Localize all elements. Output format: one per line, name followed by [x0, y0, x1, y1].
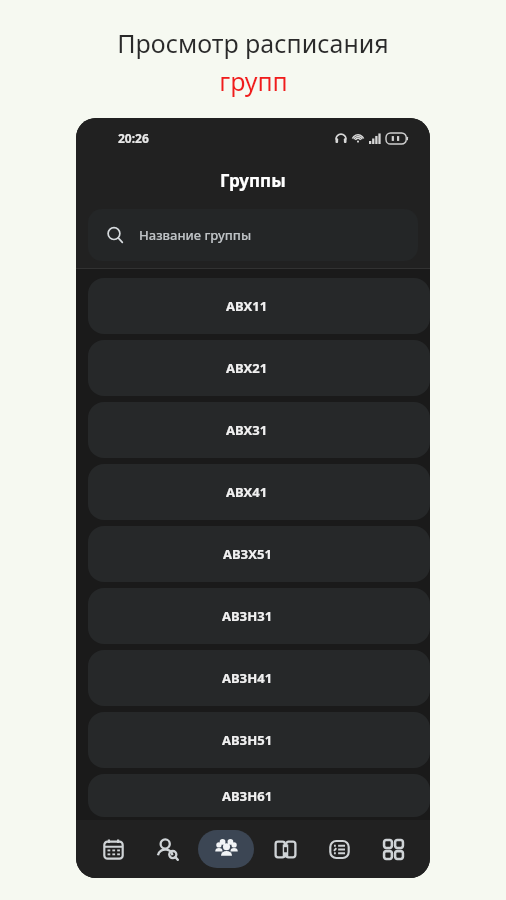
staticText: АВЗН61: [222, 787, 273, 805]
staticText: АВХ21: [226, 359, 268, 377]
staticText: 20:26: [118, 130, 149, 146]
button[interactable]: АВХ21: [88, 340, 430, 396]
staticText: АВХ11: [226, 297, 268, 315]
staticText: групп: [219, 64, 288, 98]
staticText: Просмотр расписания: [117, 26, 389, 60]
button[interactable]: АВЗН51: [88, 712, 430, 768]
button[interactable]: Groups: [198, 830, 254, 868]
button[interactable]: Buildings: [262, 829, 308, 869]
button[interactable]: Название группы: [88, 209, 418, 261]
staticText: АВХ41: [226, 483, 268, 501]
staticText: АВЗН31: [222, 607, 273, 625]
staticText: Группы: [220, 169, 286, 192]
staticText: АВЗХ51: [223, 545, 272, 563]
button[interactable]: Calendar: [90, 829, 136, 869]
staticText: АВЗН41: [222, 669, 273, 687]
button[interactable]: АВЗН31: [88, 588, 430, 644]
button[interactable]: АВХ31: [88, 402, 430, 458]
button[interactable]: АВХ41: [88, 464, 430, 520]
button[interactable]: More: [370, 829, 416, 869]
button[interactable]: АВЗН41: [88, 650, 430, 706]
staticText: Название группы: [139, 226, 252, 244]
button[interactable]: АВХ11: [88, 278, 430, 334]
button[interactable]: Notes: [316, 829, 362, 869]
staticText: АВХ31: [226, 421, 268, 439]
staticText: АВЗН51: [222, 731, 273, 749]
button[interactable]: АВЗХ51: [88, 526, 430, 582]
button[interactable]: Find teacher: [144, 829, 190, 869]
button[interactable]: АВЗН61: [88, 774, 430, 817]
